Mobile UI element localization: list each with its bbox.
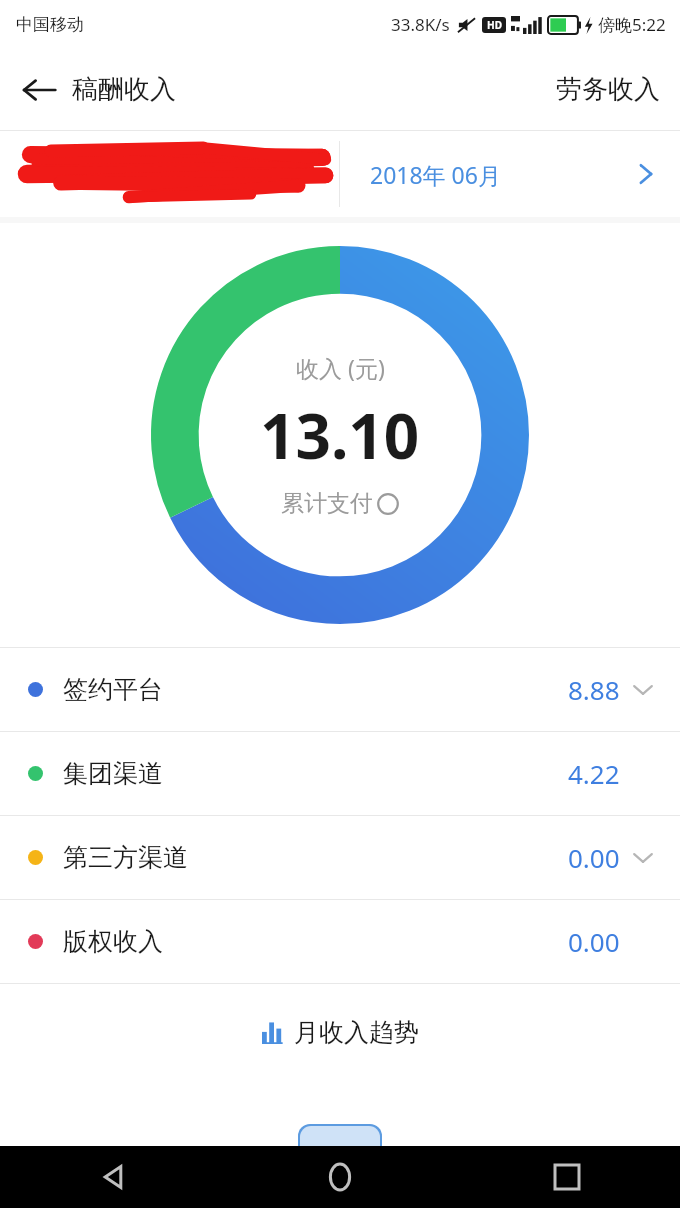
- other: Back: [22, 77, 56, 103]
- staticText: 8.88: [568, 672, 620, 707]
- button[interactable]: Recent apps: [453, 1146, 680, 1208]
- staticText: 收入 (元): [296, 352, 385, 383]
- staticText: 劳务收入: [556, 73, 660, 106]
- button[interactable]: [0, 131, 339, 217]
- button[interactable]: [300, 1126, 380, 1146]
- button[interactable]: 2018年 06月: [340, 131, 680, 217]
- staticText: 33.8K/s: [391, 13, 450, 36]
- staticText: HD: [487, 18, 502, 32]
- staticText: 累计支付: [281, 489, 373, 518]
- button[interactable]: Home: [226, 1146, 453, 1208]
- staticText: 2018年 06月: [370, 159, 501, 190]
- button[interactable]: 劳务收入: [536, 59, 680, 120]
- button[interactable]: Back: [0, 63, 190, 116]
- button[interactable]: 版权收入: [0, 900, 680, 983]
- staticText: 第三方渠道: [63, 842, 188, 873]
- button[interactable]: 第三方渠道: [0, 816, 680, 899]
- staticText: 0.00: [568, 840, 620, 875]
- button[interactable]: 集团渠道: [0, 732, 680, 815]
- button[interactable]: Back: [0, 1146, 226, 1208]
- staticText: 签约平台: [63, 674, 163, 705]
- other: Help: [377, 493, 399, 515]
- staticText: 版权收入: [63, 926, 163, 957]
- staticText: 13.10: [260, 393, 420, 477]
- staticText: 傍晚5:22: [598, 13, 666, 36]
- button[interactable]: 累计支付: [281, 489, 399, 518]
- staticText: 0.00: [568, 924, 620, 959]
- staticText: 稿酬收入: [72, 73, 176, 106]
- button[interactable]: 签约平台: [0, 648, 680, 731]
- button[interactable]: 月收入趋势: [242, 1007, 439, 1058]
- staticText: 集团渠道: [63, 758, 163, 789]
- staticText: 中国移动: [16, 14, 84, 35]
- staticText: 月收入趋势: [294, 1017, 419, 1048]
- staticText: 4.22: [568, 756, 620, 791]
